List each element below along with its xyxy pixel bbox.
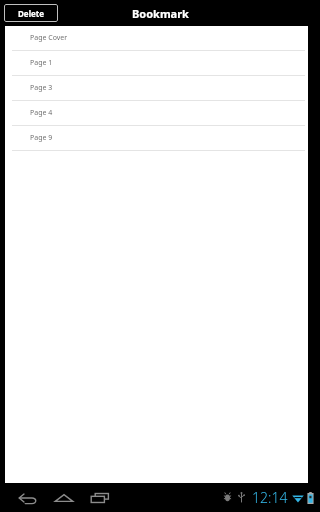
button[interactable]: Back [10, 483, 46, 512]
staticText: Bookmark [132, 6, 189, 21]
button[interactable]: Status [223, 488, 316, 507]
staticText: Page 3 [30, 83, 53, 93]
button[interactable]: Home [46, 483, 82, 512]
staticText: Delete [18, 8, 45, 19]
button[interactable]: Recent apps [82, 483, 118, 512]
button[interactable]: Page 3 [5, 76, 308, 100]
button[interactable]: Page 4 [5, 101, 308, 125]
button[interactable]: Page 9 [5, 126, 308, 150]
staticText: Page 9 [30, 133, 53, 143]
staticText: 12:14 [252, 488, 288, 507]
staticText: Page Cover [30, 33, 68, 43]
staticText: Page 4 [30, 108, 53, 118]
button[interactable]: Page Cover [5, 26, 308, 50]
button[interactable]: Delete [4, 4, 58, 22]
button[interactable]: Page 1 [5, 51, 308, 75]
staticText: Page 1 [30, 58, 53, 68]
